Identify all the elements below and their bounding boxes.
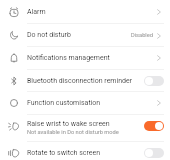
button[interactable]: Rotate to switch screen — [0, 142, 170, 160]
button[interactable]: Notifications management — [0, 47, 170, 69]
staticText: Alarm — [27, 8, 46, 16]
button[interactable]: Bluetooth disconnection reminder — [0, 70, 170, 91]
button[interactable]: Switch on — [144, 121, 164, 131]
button[interactable]: Do not disturb — [0, 24, 170, 46]
staticText: Bluetooth disconnection reminder — [27, 77, 133, 85]
staticText: Notifications management — [27, 54, 110, 62]
button[interactable]: Switch off — [144, 148, 164, 158]
button[interactable]: Alarm — [0, 0, 170, 23]
staticText: Do not disturb — [27, 31, 71, 39]
button[interactable]: Switch off — [144, 76, 164, 86]
staticText: Not available in Do not disturb mode — [27, 129, 119, 136]
button[interactable]: Raise wrist to wake screen — [0, 115, 170, 141]
staticText: Disabled — [131, 32, 153, 39]
staticText: Function customisation — [27, 99, 101, 107]
staticText: Rotate to switch screen — [27, 149, 101, 157]
button[interactable]: Function customisation — [0, 92, 170, 114]
staticText: Raise wrist to wake screen — [27, 120, 110, 128]
